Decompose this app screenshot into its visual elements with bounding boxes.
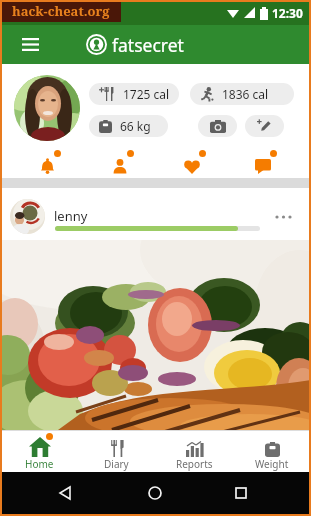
staticText: lenny [54,207,88,225]
staticText: hack-cheat.org [12,2,110,20]
button[interactable] [106,150,134,176]
button[interactable] [17,25,43,64]
button[interactable] [226,472,256,514]
staticText: Weight [255,457,289,471]
button[interactable]: Weight [233,433,310,472]
staticText: Diary [104,457,129,471]
button[interactable]: lenny [0,188,311,240]
staticText: 1725 cal [123,86,170,102]
button[interactable] [249,150,277,176]
button[interactable]: fatsecret [86,25,184,64]
button[interactable] [33,150,61,176]
button[interactable]: 1725 cal [89,83,179,105]
button[interactable]: Diary [78,433,155,472]
button[interactable] [178,150,206,176]
button[interactable] [0,240,311,430]
button[interactable] [50,472,80,514]
button[interactable] [14,75,80,141]
button[interactable]: 1836 cal [190,83,294,105]
staticText: fatsecret [112,33,184,57]
staticText: Reports [176,457,213,471]
button[interactable] [140,472,170,514]
button[interactable]: 66 kg [89,115,168,137]
button[interactable]: Reports [156,433,233,472]
button[interactable]: Home [1,433,78,472]
staticText: 12:30 [272,5,303,21]
staticText: 66 kg [120,118,151,134]
button[interactable] [198,115,237,137]
staticText: Home [25,457,54,471]
button[interactable] [245,115,284,137]
staticText: 1836 cal [222,86,269,102]
